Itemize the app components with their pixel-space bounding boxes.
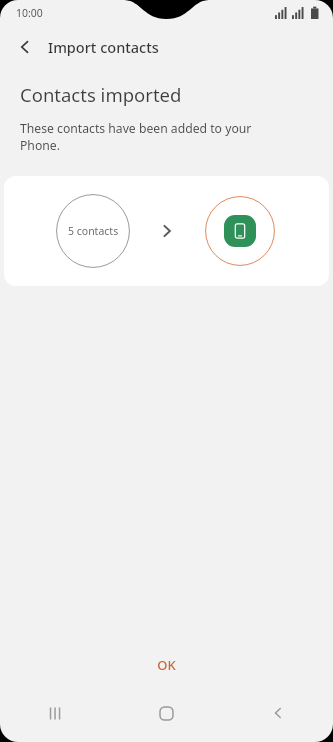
- staticText: 5 contacts: [68, 224, 119, 238]
- staticText: OK: [157, 656, 176, 674]
- staticText: Contacts imported: [20, 82, 182, 107]
- button[interactable]: Recent apps: [0, 696, 111, 730]
- staticText: These contacts have been added to your P…: [20, 120, 283, 154]
- button[interactable]: Home: [111, 696, 222, 730]
- button[interactable]: Back: [8, 30, 42, 64]
- button[interactable]: OK: [0, 646, 333, 684]
- staticText: Import contacts: [48, 37, 159, 57]
- staticText: 10:00: [16, 6, 43, 20]
- button[interactable]: 5 contacts: [4, 176, 329, 286]
- button[interactable]: Back: [222, 696, 333, 730]
